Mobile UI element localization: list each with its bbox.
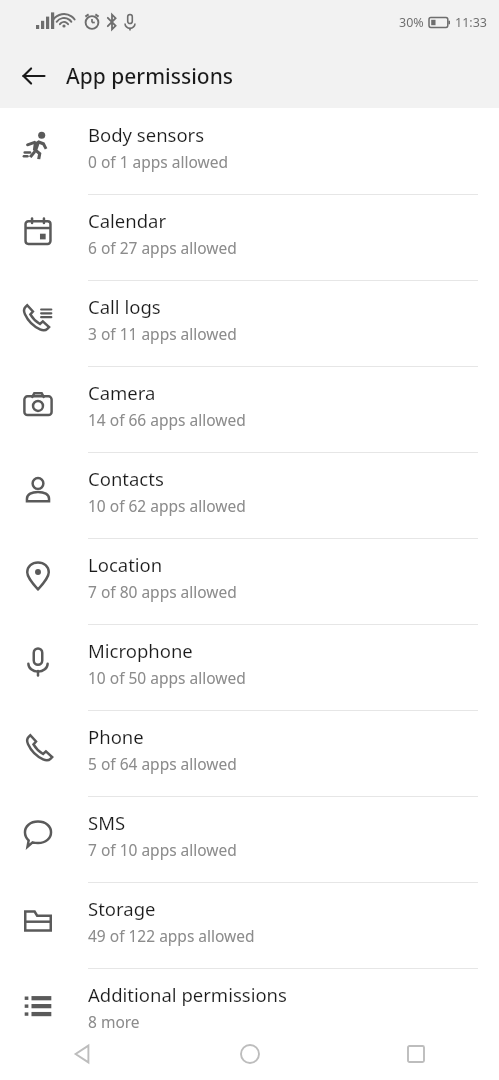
staticText: 3 of 11 apps allowed [88,323,237,344]
staticText: Contacts [88,466,164,491]
staticText: Microphone [88,638,193,663]
staticText: 49 of 122 apps allowed [88,925,255,946]
button[interactable]: Microphone [0,624,499,710]
staticText: Camera [88,380,156,405]
button[interactable]: Contacts [0,452,499,538]
button[interactable]: Back [0,1028,167,1080]
staticText: App permissions [66,62,234,91]
staticText: SMS [88,810,126,835]
button[interactable]: Back [10,52,58,100]
staticText: 7 of 80 apps allowed [88,581,237,602]
staticText: Phone [88,724,144,749]
staticText: Storage [88,896,156,921]
button[interactable]: Recent apps [333,1028,499,1080]
button[interactable]: Home [167,1028,333,1080]
staticText: Calendar [88,208,167,233]
button[interactable]: Calendar [0,194,499,280]
staticText: 10 of 50 apps allowed [88,667,246,688]
button[interactable]: Location [0,538,499,624]
staticText: 5 of 64 apps allowed [88,753,237,774]
button[interactable]: Additional permissions [0,968,499,1028]
staticText: 6 of 27 apps allowed [88,237,237,258]
staticText: 8 more [88,1011,140,1028]
staticText: 30% [399,14,424,31]
staticText: Location [88,552,163,577]
staticText: 7 of 10 apps allowed [88,839,237,860]
button[interactable]: Storage [0,882,499,968]
button[interactable]: Call logs [0,280,499,366]
staticText: 14 of 66 apps allowed [88,409,246,430]
staticText: 10 of 62 apps allowed [88,495,246,516]
button[interactable]: Phone [0,710,499,796]
button[interactable]: Body sensors [0,108,499,194]
staticText: 11:33 [455,14,487,31]
staticText: Call logs [88,294,161,319]
staticText: Additional permissions [88,982,287,1007]
button[interactable]: SMS [0,796,499,882]
staticText: 0 of 1 apps allowed [88,151,228,172]
button[interactable]: Camera [0,366,499,452]
staticText: Body sensors [88,122,205,147]
